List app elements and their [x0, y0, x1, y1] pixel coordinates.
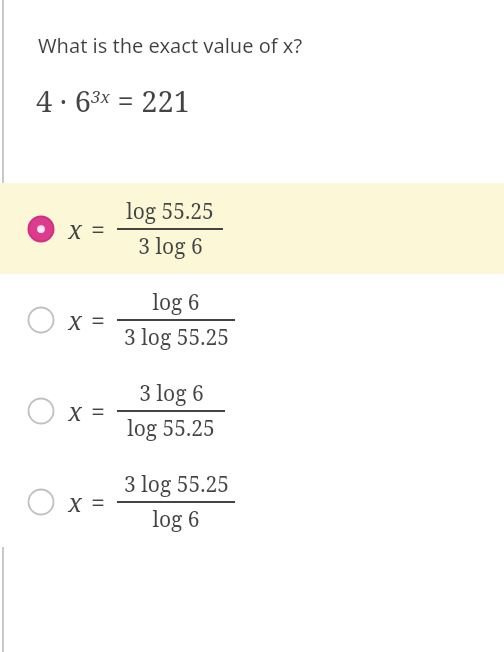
button[interactable]: x: [0, 456, 504, 547]
button[interactable]: x: [0, 274, 504, 365]
staticText: log 6: [152, 288, 200, 317]
staticText: = 221: [110, 81, 190, 120]
staticText: What is the exact value of x?: [38, 32, 303, 59]
staticText: log 55.25: [127, 414, 215, 443]
staticText: =: [91, 212, 105, 246]
staticText: 3x: [91, 85, 110, 108]
staticText: =: [91, 303, 105, 337]
staticText: x: [68, 303, 82, 337]
staticText: 3 log 6: [138, 232, 203, 261]
staticText: x: [68, 212, 82, 246]
staticText: log 6: [152, 505, 200, 534]
button[interactable]: x: [0, 365, 504, 456]
staticText: x: [68, 485, 82, 519]
staticText: log 55.25: [126, 197, 214, 226]
staticText: =: [91, 485, 105, 519]
staticText: 4 · 6: [36, 81, 91, 120]
staticText: 3 log 55.25: [124, 470, 229, 499]
staticText: x: [68, 394, 82, 428]
staticText: =: [91, 394, 105, 428]
button[interactable]: x: [0, 183, 504, 274]
staticText: 3 log 6: [139, 379, 204, 408]
staticText: 3 log 55.25: [124, 323, 229, 352]
